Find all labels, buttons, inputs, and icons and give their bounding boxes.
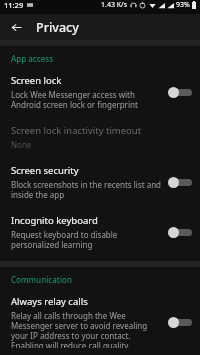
button[interactable]: Back	[6, 17, 26, 37]
staticText: Relay all calls through the Wee Messenge…	[11, 310, 164, 348]
staticText: Privacy	[36, 19, 79, 36]
staticText: 1.43 K/s	[101, 0, 127, 10]
staticText: Lock Wee Messenger access with Android s…	[11, 89, 164, 110]
button[interactable]: Always relay calls	[0, 288, 200, 355]
staticText: Incognito keyboard	[11, 214, 98, 227]
staticText: Always relay calls	[11, 295, 88, 308]
staticText: Screen lock inactivity timeout	[11, 124, 142, 137]
button[interactable]: Screen security	[168, 172, 198, 192]
staticText: Screen lock	[11, 74, 62, 87]
staticText: None	[11, 139, 32, 150]
staticText: Block screenshots in the recents list an…	[11, 179, 164, 200]
staticText: App access	[11, 53, 54, 64]
staticText: Request keyboard to disable personalized…	[11, 229, 164, 250]
button[interactable]: Screen security	[0, 157, 200, 207]
button[interactable]: Screen lock inactivity timeout	[0, 117, 200, 157]
staticText: 93%	[176, 0, 190, 10]
button[interactable]: Screen lock	[0, 67, 200, 117]
button[interactable]: Incognito keyboard	[168, 222, 198, 242]
button[interactable]: Incognito keyboard	[0, 207, 200, 257]
button[interactable]: Always relay calls	[168, 312, 198, 332]
staticText: Communication	[11, 274, 72, 285]
staticText: Screen security	[11, 164, 79, 177]
staticText: 11:29	[4, 0, 24, 10]
button[interactable]: Screen lock	[168, 82, 198, 102]
